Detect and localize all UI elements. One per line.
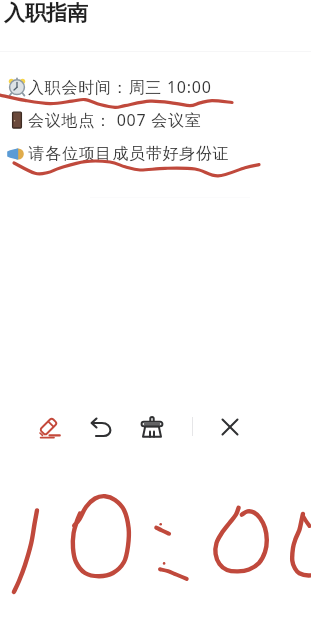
staticText: 入职会时间：周三 10:00: [28, 76, 212, 98]
button[interactable]: Undo: [81, 407, 121, 447]
staticText: 会议地点： 007 会议室: [28, 109, 202, 131]
staticText: 入职指南: [4, 0, 88, 26]
button[interactable]: Clear: [132, 407, 172, 447]
button[interactable]: Pen: [30, 407, 70, 447]
staticText: 请各位项目成员带好身份证: [28, 144, 229, 164]
button[interactable]: Close: [210, 407, 250, 447]
